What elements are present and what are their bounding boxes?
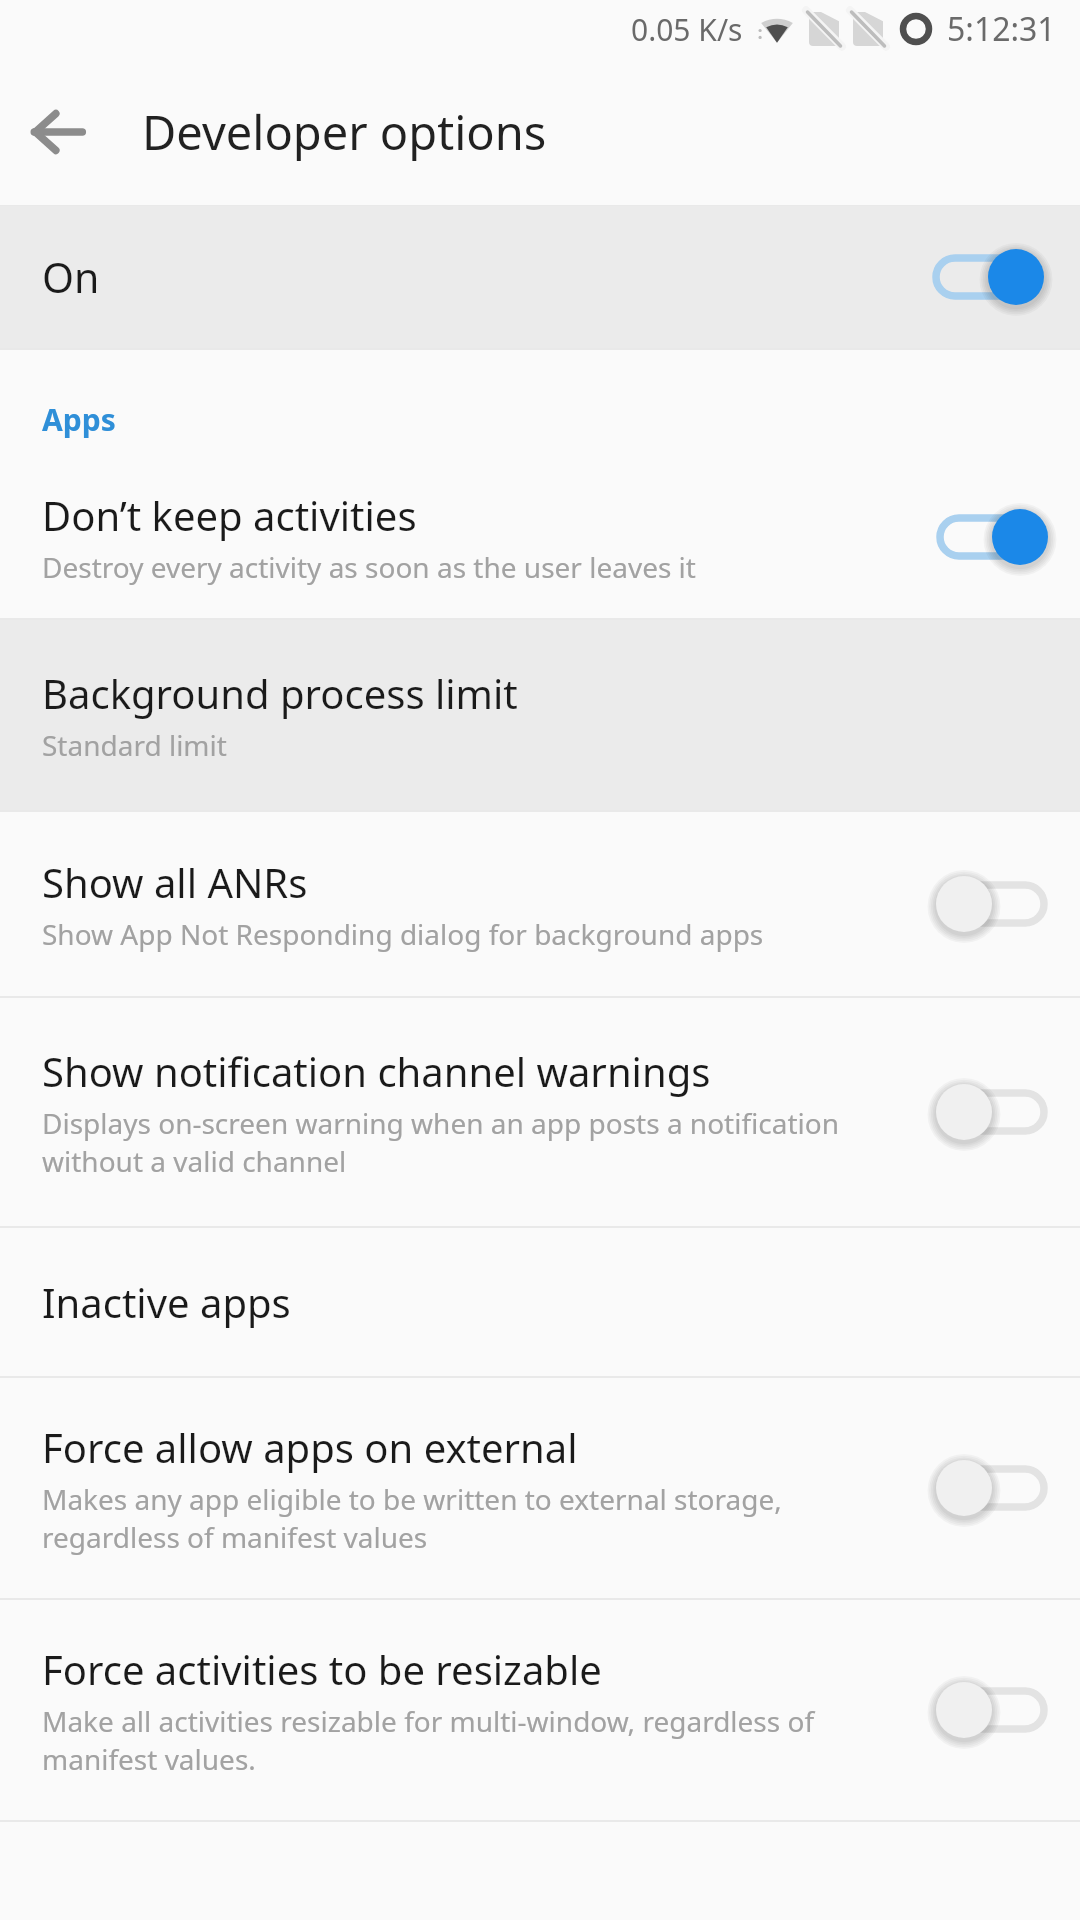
staticText: Apps [42, 399, 116, 440]
button[interactable]: On [0, 206, 1080, 348]
button[interactable]: Back [0, 74, 116, 190]
button[interactable]: Switch on [936, 495, 1054, 579]
staticText: Standard limit [42, 726, 227, 764]
staticText: On [42, 249, 932, 305]
staticText: Force activities to be resizable [42, 1642, 602, 1696]
staticText: Show App Not Responding dialog for backg… [42, 915, 764, 953]
button[interactable]: Switch off [936, 862, 1054, 946]
staticText: Make all activities resizable for multi-… [42, 1702, 916, 1778]
staticText: Background process limit [42, 666, 518, 720]
staticText: Force allow apps on external [42, 1420, 578, 1474]
staticText: Don’t keep activities [42, 488, 417, 542]
staticText: Inactive apps [42, 1275, 291, 1329]
button[interactable]: Force activities to be resizable [0, 1600, 1080, 1820]
button[interactable]: Switch on [932, 235, 1050, 319]
button[interactable]: Inactive apps [0, 1228, 1080, 1376]
button[interactable]: Force allow apps on external [0, 1378, 1080, 1598]
staticText: Makes any app eligible to be written to … [42, 1480, 916, 1556]
button[interactable]: Don’t keep activities [0, 456, 1080, 618]
staticText: 0.05 K/s [631, 9, 743, 50]
button[interactable]: Background process limit [0, 620, 1080, 810]
staticText: 5:12:31 [947, 7, 1056, 51]
staticText: Show notification channel warnings [42, 1044, 711, 1098]
button[interactable]: Show notification channel warnings [0, 998, 1080, 1226]
button[interactable]: Switch off [936, 1446, 1054, 1530]
staticText: Show all ANRs [42, 855, 308, 909]
button[interactable]: Show all ANRs [0, 812, 1080, 996]
staticText: Destroy every activity as soon as the us… [42, 548, 696, 586]
button[interactable]: Switch off [936, 1668, 1054, 1752]
staticText: Developer options [142, 100, 547, 164]
button[interactable]: Switch off [936, 1070, 1054, 1154]
staticText: Displays on-screen warning when an app p… [42, 1104, 916, 1180]
